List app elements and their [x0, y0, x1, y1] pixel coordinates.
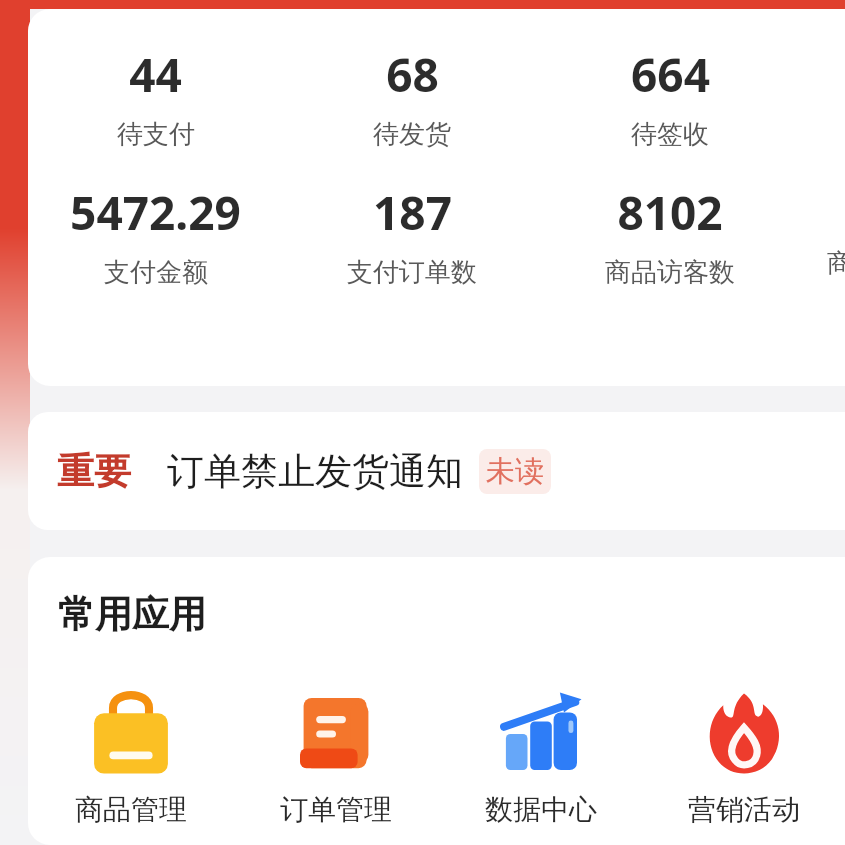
staticText: 8102 [617, 181, 723, 244]
staticText: 待支付 [117, 118, 195, 151]
staticText: 重要 [57, 448, 131, 495]
button[interactable]: 8102 [541, 181, 799, 289]
staticText: 664 [631, 43, 710, 106]
other: 订单管理 [284, 682, 388, 786]
staticText: 支付订单数 [347, 256, 477, 289]
staticText: 未读 [486, 453, 544, 490]
button[interactable]: 44 [28, 43, 283, 151]
other: 营销活动 [692, 682, 796, 786]
other: 商品管理 [79, 682, 183, 786]
staticText: 常用应用 [58, 591, 206, 638]
staticText: 44 [129, 43, 182, 106]
staticText: 商 [827, 247, 845, 280]
staticText: 数据中心 [485, 792, 597, 827]
staticText: 68 [386, 43, 439, 106]
button[interactable]: 订单管理 [233, 682, 438, 827]
button[interactable]: 重要 [28, 412, 845, 530]
staticText: 待签收 [631, 118, 709, 151]
staticText: 订单禁止发货通知 [167, 448, 463, 495]
staticText: 营销活动 [688, 792, 800, 827]
staticText: 187 [373, 181, 452, 244]
button[interactable]: 187 [283, 181, 541, 289]
button[interactable]: 商 [799, 181, 845, 280]
staticText: 待发货 [373, 118, 451, 151]
staticText: 商品访客数 [605, 256, 735, 289]
button[interactable]: 商品管理 [28, 682, 233, 827]
staticText: 支付金额 [104, 256, 208, 289]
button[interactable]: 664 [541, 43, 799, 151]
staticText: 5472.29 [70, 181, 241, 244]
button[interactable]: 数据中心 [438, 682, 643, 827]
button[interactable]: 营销活动 [643, 682, 845, 827]
staticText: 订单管理 [280, 792, 392, 827]
button[interactable]: 68 [283, 43, 541, 151]
button[interactable]: 5472.29 [28, 181, 283, 289]
staticText: 商品管理 [75, 792, 187, 827]
other: 数据中心 [489, 682, 593, 786]
